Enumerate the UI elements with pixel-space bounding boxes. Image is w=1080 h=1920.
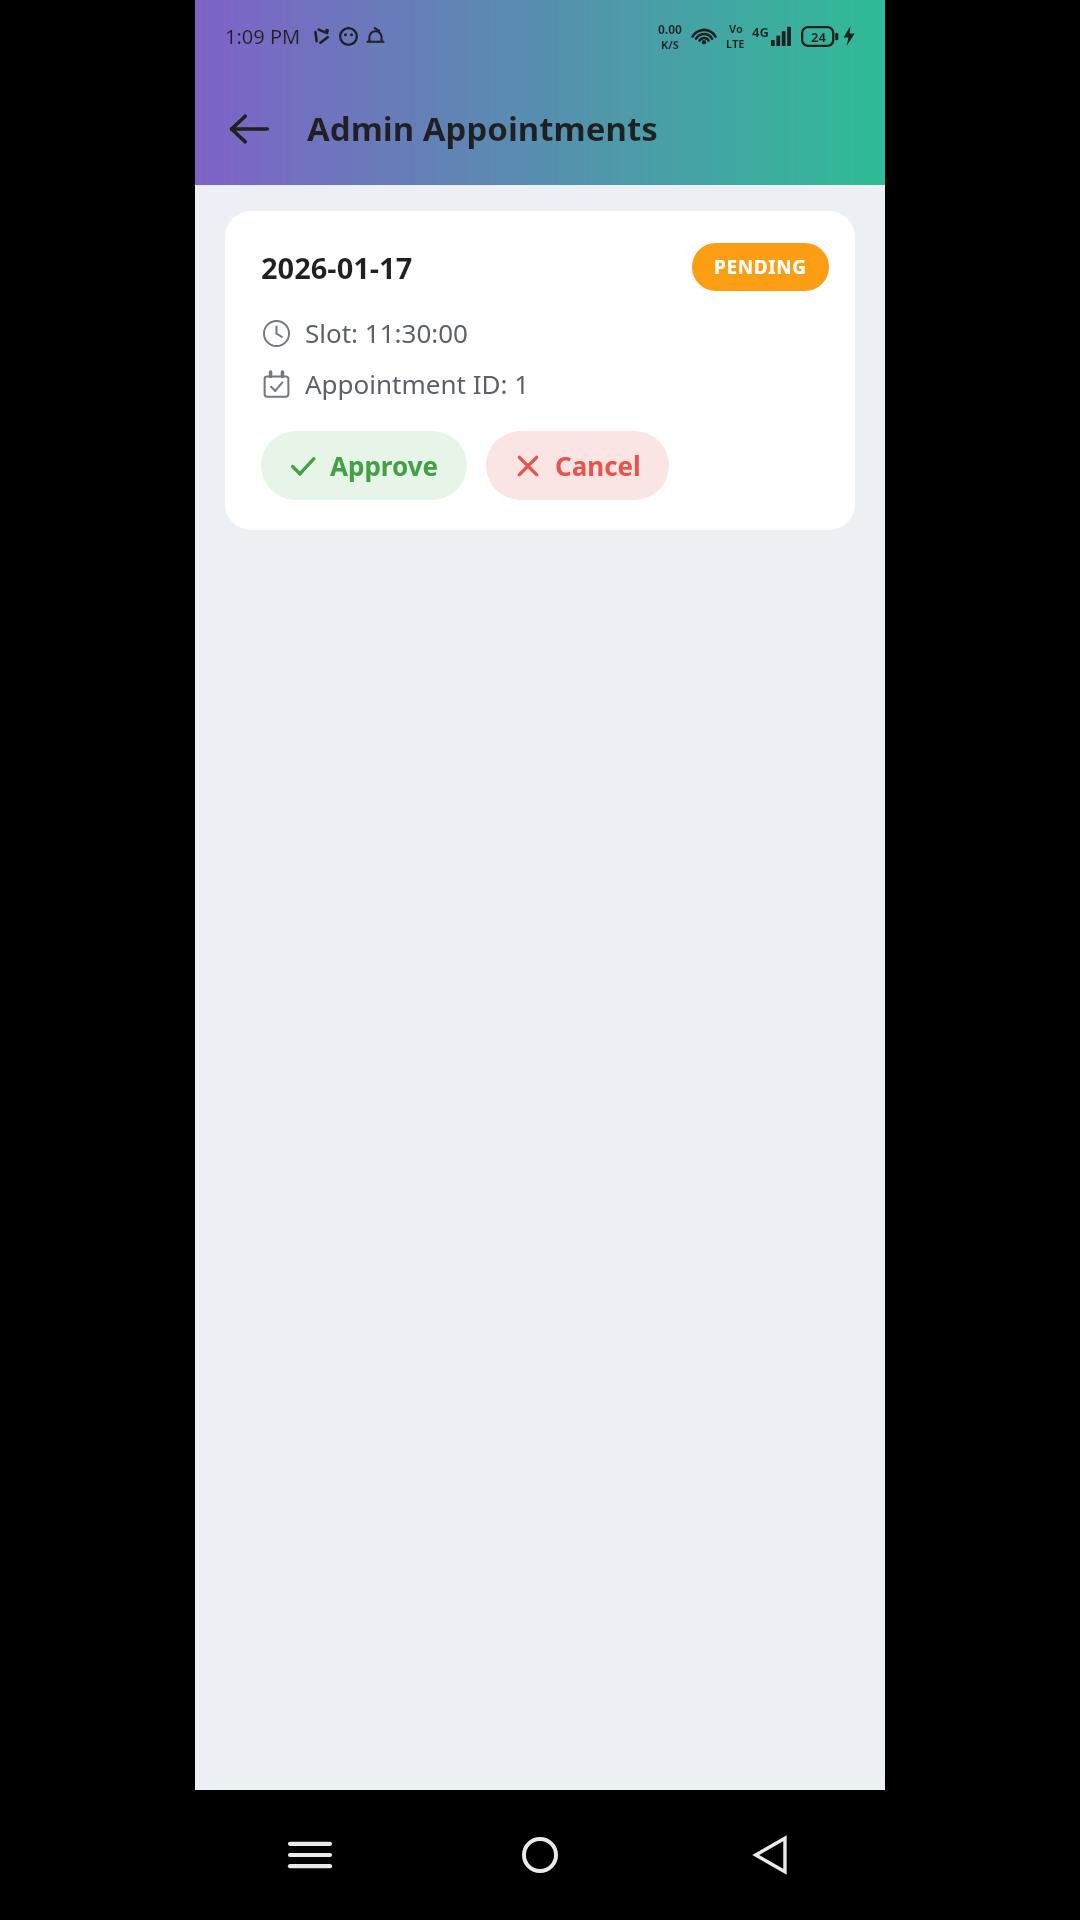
staticText: Approve bbox=[330, 448, 439, 483]
staticText: 1:09 PM bbox=[225, 23, 301, 50]
staticText: Vo bbox=[729, 21, 743, 36]
button[interactable]: Cancel bbox=[486, 431, 669, 500]
button[interactable]: Recents bbox=[195, 1790, 425, 1920]
staticText: Cancel bbox=[555, 448, 641, 483]
button[interactable]: PENDING bbox=[692, 243, 829, 291]
button[interactable]: Back bbox=[213, 93, 285, 165]
staticText: K/S bbox=[661, 37, 679, 52]
staticText: Admin Appointments bbox=[307, 106, 658, 151]
staticText: PENDING bbox=[714, 254, 807, 280]
staticText: 4G bbox=[752, 23, 769, 41]
staticText: 2026-01-17 bbox=[261, 248, 413, 287]
button[interactable]: Back bbox=[655, 1790, 885, 1920]
button[interactable]: Home bbox=[425, 1790, 655, 1920]
staticText: Slot: 11:30:00 bbox=[305, 315, 468, 350]
button[interactable]: Approve bbox=[261, 431, 467, 500]
button[interactable]: 2026-01-17 bbox=[225, 211, 855, 530]
staticText: Appointment ID: 1 bbox=[305, 366, 530, 401]
staticText: 24 bbox=[811, 28, 826, 46]
staticText: LTE bbox=[726, 36, 745, 51]
staticText: 0.00 bbox=[658, 21, 682, 37]
